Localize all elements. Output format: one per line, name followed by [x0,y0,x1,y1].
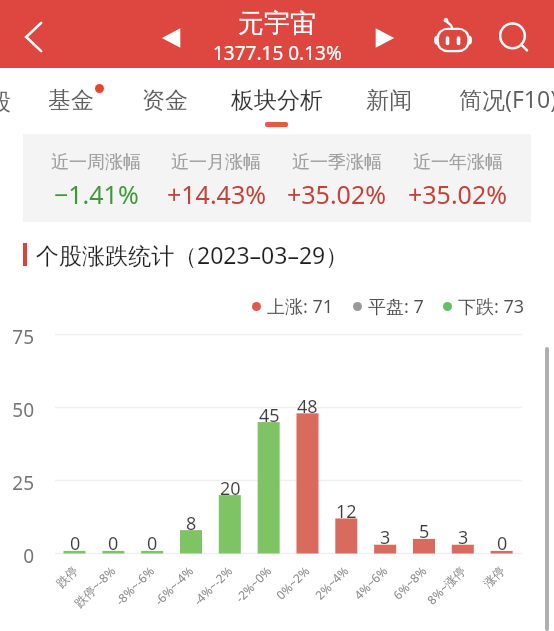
staticText: 3 [380,525,391,550]
staticText: -2%~0% [231,562,275,605]
staticText: 0%~2% [272,562,313,603]
staticText: 12 [336,499,357,524]
staticText: 涨停 [480,563,508,591]
button[interactable]: 基金 [40,76,102,125]
staticText: 近一季涨幅 [292,151,382,174]
staticText: 下跌: 73 [458,294,525,318]
staticText: −1.41% [54,177,139,211]
staticText: 4%~6% [350,562,391,603]
staticText: 0 [147,531,158,556]
staticText: 简况(F10) [459,83,554,114]
button[interactable]: 下跌: 73 [443,294,525,318]
staticText: 48 [297,394,318,419]
staticText: 8%~涨停 [423,562,469,608]
staticText: 0 [0,543,34,569]
staticText: 跌停~-8% [71,562,119,610]
staticText: 基金 [48,86,94,115]
staticText: 50 [0,397,34,423]
staticText: 3 [458,525,469,550]
staticText: 75 [0,324,34,350]
staticText: 股 [0,88,11,117]
staticText: 近一月涨幅 [171,151,261,174]
staticText: 0 [70,531,81,556]
button[interactable]: 上涨: 71 [252,294,334,318]
staticText: -6%~-4% [151,562,197,608]
staticText: 2%~4% [311,562,352,603]
staticText: 25 [0,470,34,496]
button[interactable]: 板块分析 [223,76,331,125]
staticText: 近一年涨幅 [413,151,503,174]
staticText: 0 [108,531,119,556]
staticText: 元宇宙 [238,7,316,40]
staticText: 个股涨跌统计（2023–03–29） [36,239,349,270]
staticText: 6%~8% [389,562,430,603]
staticText: -4%~-2% [190,562,236,608]
button[interactable]: Previous sector [148,16,192,60]
staticText: 近一周涨幅 [51,151,141,174]
button[interactable]: Search [490,12,536,58]
staticText: +35.02% [408,177,507,211]
staticText: +14.43% [167,177,266,211]
button[interactable]: 资金 [134,76,196,125]
staticText: 上涨: 71 [267,294,334,318]
staticText: 1377.15 0.13% [213,40,342,66]
staticText: 资金 [142,86,188,115]
button[interactable]: 平盘: 7 [353,294,424,318]
staticText: 板块分析 [231,86,323,115]
staticText: +35.02% [287,177,386,211]
staticText: 跌停 [53,563,81,591]
button[interactable]: Next sector [364,16,408,60]
staticText: 45 [259,403,280,428]
staticText: 0 [497,531,508,556]
staticText: 8 [186,511,197,536]
staticText: 20 [220,476,241,501]
staticText: -8%~-6% [112,562,158,608]
staticText: 新闻 [366,86,412,115]
staticText: 5 [419,519,430,544]
button[interactable]: 简况(F10) [451,73,554,124]
button[interactable]: AI assistant [429,11,477,59]
staticText: 平盘: 7 [368,294,424,318]
button[interactable]: 新闻 [358,76,420,125]
button[interactable]: Back [8,12,58,62]
